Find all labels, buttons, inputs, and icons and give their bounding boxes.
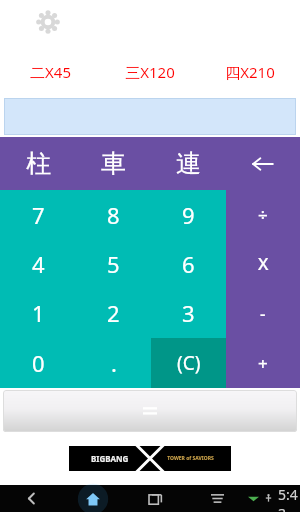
staticText: - bbox=[260, 302, 266, 325]
button[interactable]: 連 bbox=[151, 137, 226, 190]
staticText: 四X210 bbox=[225, 62, 275, 82]
button[interactable]: BIGBANG bbox=[69, 446, 231, 471]
button[interactable]: 三X120 bbox=[100, 46, 200, 98]
staticText: 二X45 bbox=[30, 62, 71, 82]
button[interactable]: 3 bbox=[151, 288, 226, 338]
staticText: 柱 bbox=[26, 148, 51, 179]
staticText: BIGBANG bbox=[91, 453, 129, 464]
button[interactable] bbox=[4, 98, 296, 135]
button[interactable]: Recents bbox=[124, 485, 186, 512]
staticText: X bbox=[258, 252, 269, 275]
button[interactable]: 5 bbox=[76, 239, 151, 288]
staticText: 2 bbox=[107, 298, 120, 328]
staticText: 7 bbox=[32, 200, 45, 230]
button[interactable]: 8 bbox=[76, 190, 151, 239]
button[interactable]: Menu bbox=[186, 485, 248, 512]
staticText: 0 bbox=[32, 348, 45, 378]
button[interactable]: 6 bbox=[151, 239, 226, 288]
button[interactable]: 2 bbox=[76, 288, 151, 338]
staticText: 5 bbox=[107, 249, 120, 279]
button[interactable]: 9 bbox=[151, 190, 226, 239]
button[interactable]: . bbox=[76, 338, 151, 388]
button[interactable] bbox=[3, 390, 297, 432]
staticText: 1 bbox=[32, 298, 45, 328]
button[interactable]: + bbox=[226, 338, 300, 388]
staticText: 8 bbox=[107, 200, 120, 230]
staticText: 4 bbox=[32, 249, 45, 279]
button[interactable]: 二X45 bbox=[0, 46, 100, 98]
staticText: 6 bbox=[182, 249, 195, 279]
staticText: 3 bbox=[182, 298, 195, 328]
button[interactable]: X bbox=[226, 239, 300, 288]
staticText: TOWER of SAVIORS bbox=[167, 455, 214, 462]
staticText: . bbox=[111, 348, 117, 378]
staticText: ÷ bbox=[258, 203, 268, 226]
staticText: (C) bbox=[177, 350, 201, 376]
button[interactable]: 1 bbox=[0, 288, 76, 338]
button[interactable]: Backspace bbox=[226, 137, 300, 190]
staticText: 三X120 bbox=[125, 62, 175, 82]
staticText: + bbox=[258, 352, 268, 375]
button[interactable]: - bbox=[226, 288, 300, 338]
button[interactable]: 車 bbox=[76, 137, 151, 190]
staticText: 9 bbox=[182, 200, 195, 230]
staticText: 5:43 bbox=[278, 485, 300, 512]
button[interactable]: (C) bbox=[151, 338, 226, 388]
button[interactable]: 0 bbox=[0, 338, 76, 388]
button[interactable]: Settings bbox=[34, 8, 62, 36]
button[interactable]: 7 bbox=[0, 190, 76, 239]
button[interactable]: ÷ bbox=[226, 190, 300, 239]
button[interactable]: Home bbox=[62, 485, 124, 512]
button[interactable]: 柱 bbox=[0, 137, 76, 190]
button[interactable]: 4 bbox=[0, 239, 76, 288]
staticText: 連 bbox=[176, 148, 201, 179]
button[interactable]: 四X210 bbox=[200, 46, 300, 98]
button[interactable]: Back bbox=[0, 485, 62, 512]
staticText: 車 bbox=[101, 148, 126, 179]
